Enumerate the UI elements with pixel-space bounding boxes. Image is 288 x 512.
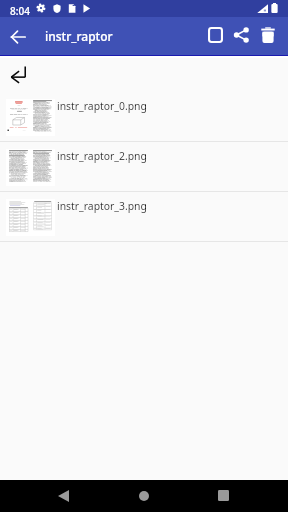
button[interactable]: instr_raptor_2.png	[0, 142, 288, 192]
staticText: instr_raptor_2.png	[57, 149, 147, 163]
button[interactable]: Select all	[200, 20, 230, 50]
button[interactable]: Navigate up	[1, 20, 34, 53]
staticText: 8:04	[10, 4, 30, 18]
button[interactable]: instr_raptor_0.png	[0, 92, 288, 142]
staticText: instr_raptor_0.png	[57, 99, 147, 113]
button[interactable]: Delete	[253, 20, 283, 50]
button[interactable]: Home	[128, 480, 160, 511]
button[interactable]: Up one level	[0, 58, 288, 92]
button[interactable]: instr_raptor	[45, 17, 165, 55]
staticText: instr_raptor	[45, 28, 113, 44]
button[interactable]: Back	[48, 480, 79, 511]
button[interactable]: Recent apps	[208, 480, 239, 511]
staticText: instr_raptor_3.png	[57, 199, 147, 213]
button[interactable]: Share	[226, 20, 256, 50]
button[interactable]: instr_raptor_3.png	[0, 192, 288, 242]
